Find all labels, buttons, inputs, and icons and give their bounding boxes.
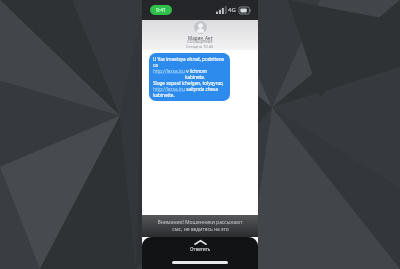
staticText: Мария_Ант bbox=[188, 35, 213, 41]
staticText: http://lexsa.icu bbox=[153, 68, 185, 74]
staticText: Sluge xopaol lchelgen, tolyqyraq bbox=[153, 80, 223, 86]
staticText: v lichnom kabinete. bbox=[185, 68, 226, 80]
button[interactable]: U Vas imeetsya ohrad, podnitene ca bbox=[153, 56, 226, 98]
button[interactable]: Ответить bbox=[190, 240, 211, 252]
staticText: Внимание! Мошенники рассылают bbox=[157, 219, 243, 226]
staticText: 9:41 bbox=[156, 7, 166, 14]
staticText: Сегодня 10:46 bbox=[186, 44, 214, 49]
other: Contact avatar bbox=[194, 21, 207, 34]
staticText: 4G bbox=[228, 6, 236, 14]
staticText: Ответить bbox=[190, 246, 211, 252]
staticText: http://lexsa.icu bbox=[153, 86, 185, 92]
button[interactable]: Contact avatar bbox=[142, 20, 258, 50]
staticText: saltynda zhexa bbox=[185, 86, 219, 92]
staticText: U Vas imeetsya ohrad, podnitene ca bbox=[153, 56, 226, 68]
staticText: смс, не ведитесь на это bbox=[172, 226, 229, 233]
staticText: kabinette. bbox=[153, 92, 175, 98]
staticText: СООБЩЕНИЕ bbox=[187, 39, 213, 44]
